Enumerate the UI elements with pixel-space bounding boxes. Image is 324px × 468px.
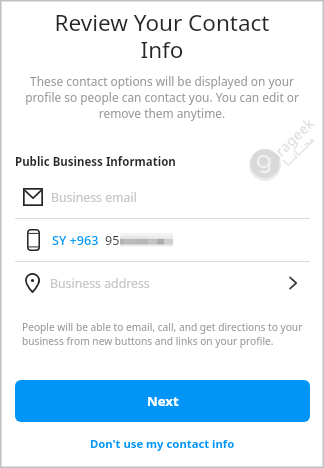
staticText: SY +963 — [52, 232, 99, 249]
staticText: Business email — [51, 189, 137, 206]
staticText: These contact options will be displayed … — [0, 73, 324, 121]
button[interactable]: Next — [15, 380, 310, 422]
other: Open business address — [285, 275, 301, 291]
button[interactable]: SY +963 — [0, 219, 324, 261]
staticText: 95 — [105, 232, 120, 249]
staticText: arageek — [265, 113, 318, 166]
button[interactable]: Business address — [0, 262, 324, 304]
staticText: People will be able to email, call, and … — [22, 320, 303, 348]
staticText: Business address — [50, 275, 150, 292]
staticText: Public Business Information — [15, 154, 176, 170]
staticText: Review Your Contact Info — [0, 7, 324, 65]
staticText: Next — [147, 392, 179, 410]
staticText: مجـــانـــا — [281, 133, 317, 169]
button[interactable]: Don't use my contact info — [0, 428, 324, 458]
staticText: Don't use my contact info — [90, 436, 235, 451]
button[interactable]: Business email — [0, 176, 324, 218]
